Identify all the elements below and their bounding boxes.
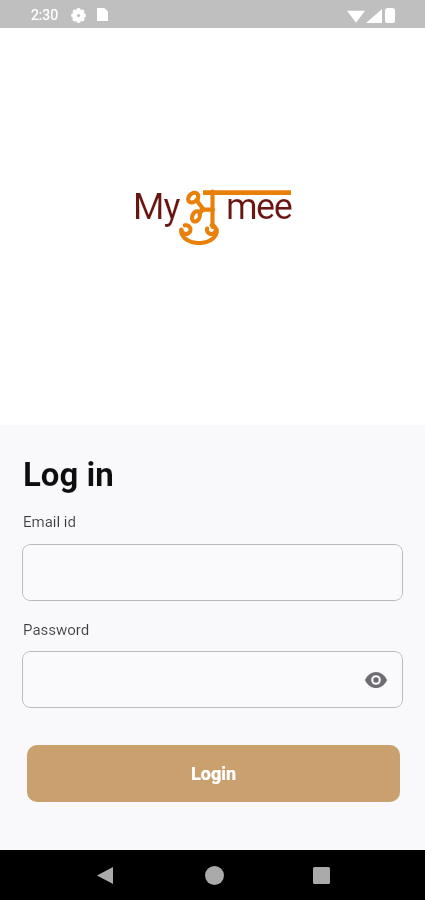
button[interactable] bbox=[22, 544, 403, 601]
button[interactable]: Login bbox=[27, 745, 400, 802]
staticText: Email id bbox=[23, 513, 76, 531]
staticText: mee bbox=[226, 186, 292, 228]
button[interactable]: Back bbox=[83, 853, 127, 897]
button[interactable]: Show password bbox=[361, 665, 391, 695]
staticText: Login bbox=[191, 763, 237, 784]
button[interactable]: Home bbox=[192, 853, 236, 897]
button[interactable]: Recent apps bbox=[299, 853, 343, 897]
button[interactable]: Show password bbox=[22, 651, 403, 708]
staticText: Password bbox=[23, 621, 90, 639]
staticText: 2:30 bbox=[31, 7, 58, 23]
staticText: Log in bbox=[23, 455, 114, 494]
staticText: My bbox=[133, 186, 180, 228]
